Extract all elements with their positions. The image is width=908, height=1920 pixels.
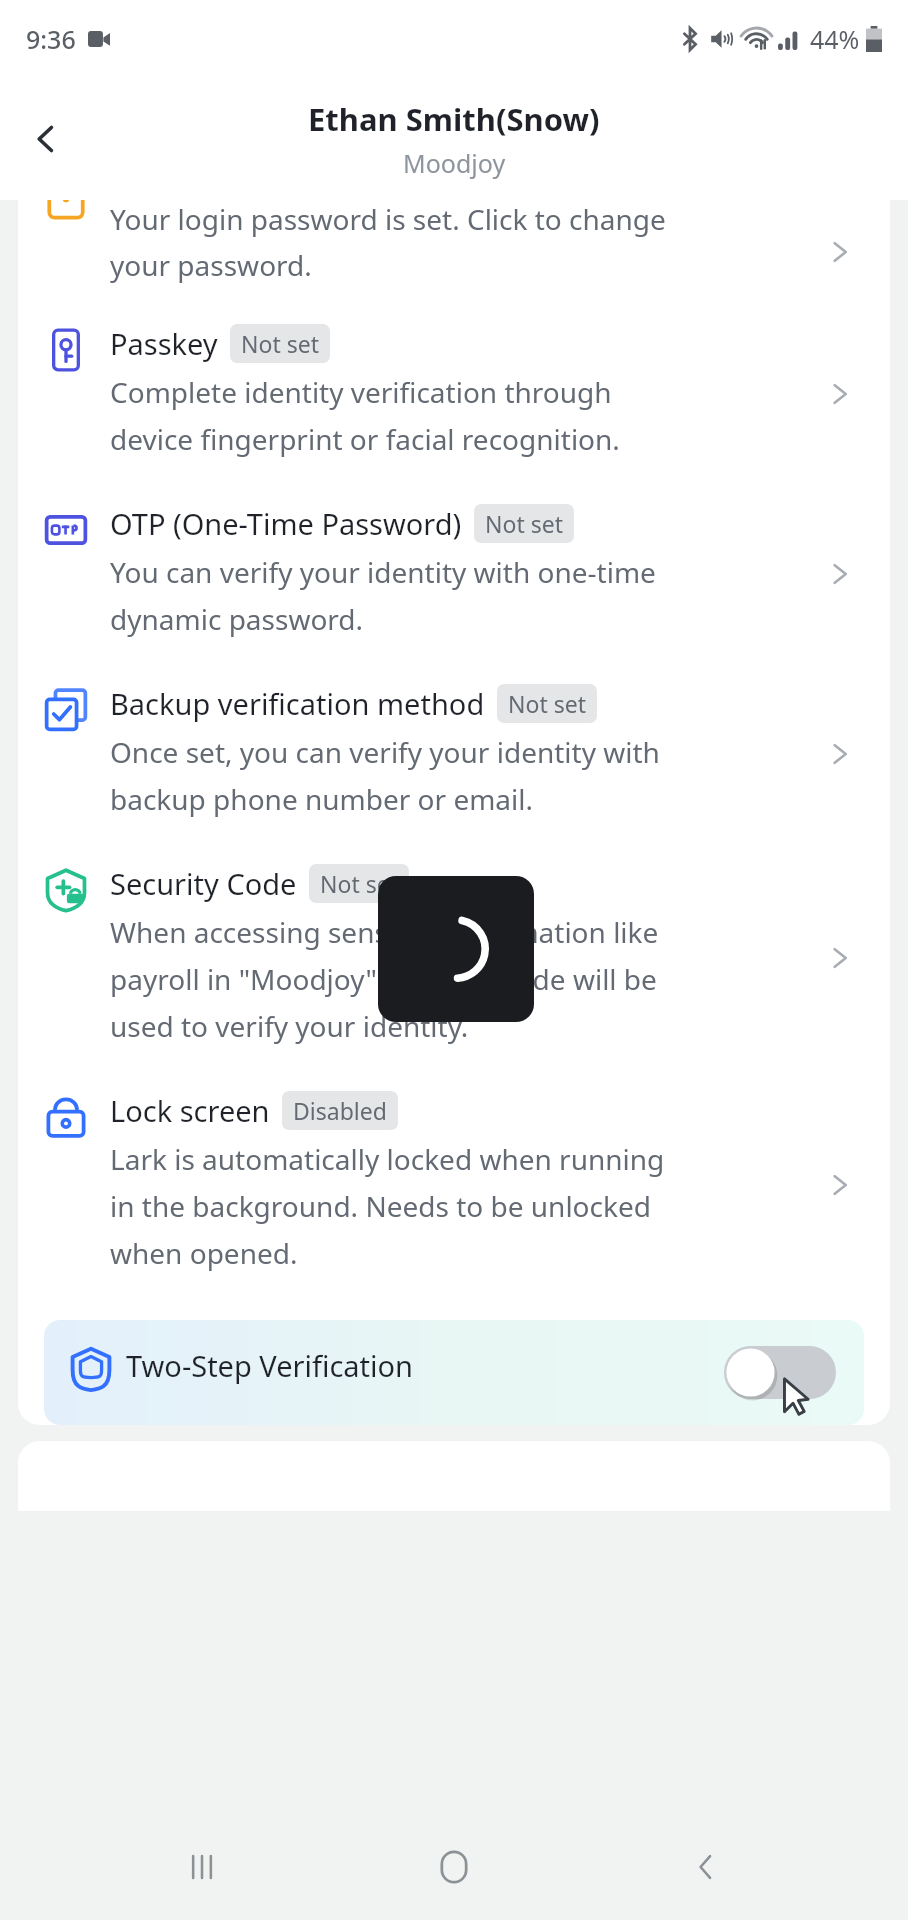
staticText: OTP (One-Time Password)	[110, 504, 462, 543]
button[interactable]: OTP (One-Time Password)	[18, 484, 890, 664]
staticText: 9:36	[26, 22, 76, 56]
button[interactable]: Home	[404, 1817, 504, 1917]
button[interactable]: Backup verification method	[18, 664, 890, 844]
staticText: backup phone number or email.	[110, 780, 534, 818]
button[interactable]: Your login password is set. Click to cha…	[18, 200, 890, 304]
staticText: You can verify your identity with one-ti…	[110, 553, 656, 591]
staticText: dynamic password.	[110, 600, 364, 638]
staticText: 44%	[810, 22, 860, 56]
staticText: used to verify your identity.	[110, 1007, 469, 1045]
staticText: when opened.	[110, 1234, 298, 1272]
button[interactable]: Back	[656, 1817, 756, 1917]
staticText: Disabled	[293, 1095, 387, 1126]
staticText: Not set	[241, 328, 319, 359]
staticText: Your login password is set. Click to cha…	[110, 200, 666, 238]
staticText: Not set	[508, 688, 586, 719]
button[interactable]: Two-Step Verification toggle	[724, 1346, 836, 1399]
staticText: Backup verification method	[110, 684, 485, 723]
button[interactable]: Lock screen	[18, 1071, 890, 1298]
staticText: Passkey	[110, 324, 218, 363]
button[interactable]: Security Code	[18, 844, 890, 1071]
button[interactable]: Back	[10, 103, 82, 175]
staticText: Lock screen	[110, 1091, 270, 1130]
staticText: Lark is automatically locked when runnin…	[110, 1140, 665, 1178]
staticText: Not set	[485, 508, 563, 539]
staticText: Security Code	[110, 864, 297, 903]
staticText: payroll in "Moodjoy", security code will…	[110, 960, 657, 998]
staticText: Once set, you can verify your identity w…	[110, 733, 660, 771]
button[interactable]: Passkey	[18, 304, 890, 484]
button[interactable]: Recent apps	[152, 1817, 252, 1917]
staticText: Moodjoy	[403, 146, 506, 180]
staticText: Ethan Smith(Snow)	[308, 98, 600, 140]
staticText: device fingerprint or facial recognition…	[110, 420, 620, 458]
staticText: When accessing sensitive information lik…	[110, 913, 659, 951]
staticText: Two-Step Verification	[126, 1346, 414, 1385]
staticText: in the background. Needs to be unlocked	[110, 1187, 651, 1225]
staticText: Not set	[320, 868, 398, 899]
button[interactable]: Two-Step Verification	[44, 1320, 864, 1425]
staticText: Complete identity verification through	[110, 373, 612, 411]
staticText: your password.	[110, 246, 312, 284]
